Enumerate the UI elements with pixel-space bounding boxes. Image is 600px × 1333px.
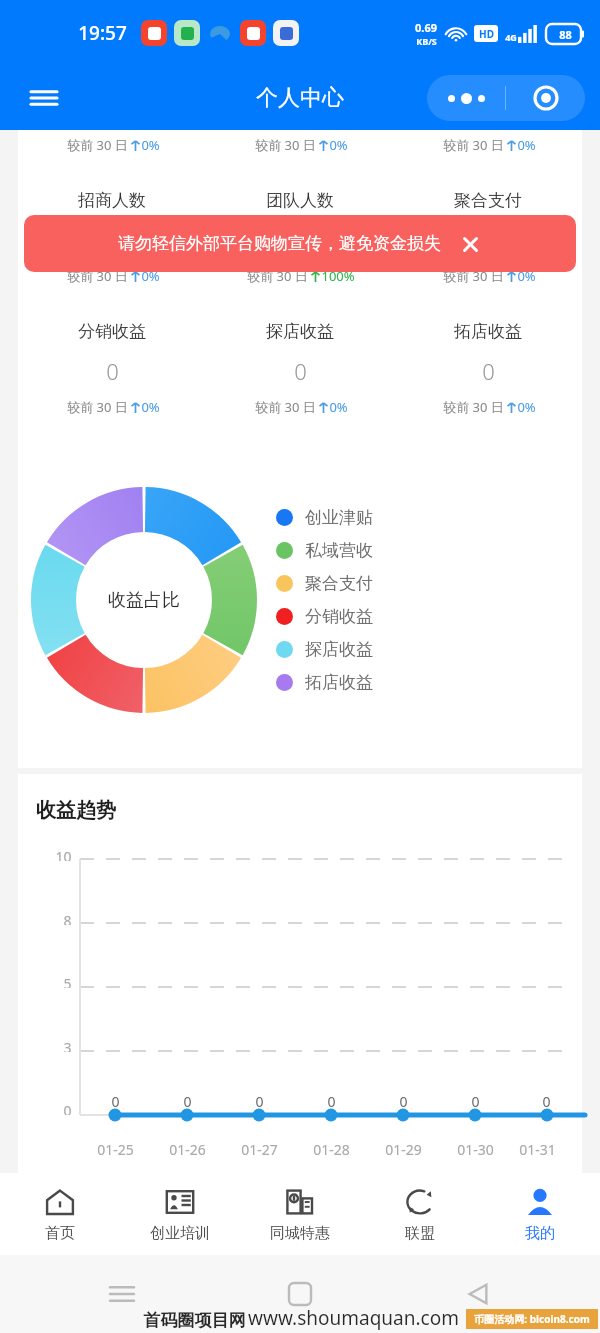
button[interactable]: 聚合支付 bbox=[276, 567, 582, 600]
staticText: 0 bbox=[106, 356, 119, 386]
button[interactable]: 探店收益 bbox=[276, 633, 582, 666]
button[interactable]: 请勿轻信外部平台购物宣传，避免资金损失 bbox=[24, 215, 576, 272]
staticText: 3 bbox=[63, 1038, 72, 1052]
staticText: 0 bbox=[542, 1092, 551, 1111]
staticText: 0 bbox=[255, 1092, 264, 1111]
staticText: 私域营收 bbox=[305, 540, 373, 561]
staticText: 0 bbox=[482, 356, 495, 386]
staticText: 4G bbox=[505, 31, 517, 43]
staticText: 0 bbox=[399, 1092, 408, 1111]
staticText: 较前 30 日 bbox=[441, 267, 506, 285]
staticText: 100% bbox=[321, 267, 355, 285]
staticText: 币圈活动网: bicoin8.com bbox=[474, 1312, 590, 1326]
button[interactable]: Back bbox=[456, 1272, 500, 1316]
button[interactable]: Close bbox=[506, 75, 585, 121]
staticText: 首码圈项目网 bbox=[141, 1308, 248, 1331]
staticText: KB/S bbox=[416, 35, 437, 47]
staticText: 较前 30 日 bbox=[441, 398, 506, 416]
staticText: 0 bbox=[106, 225, 119, 255]
button[interactable]: 聚合支付 bbox=[394, 190, 582, 285]
staticText: 10 bbox=[55, 847, 72, 861]
staticText: 0 bbox=[183, 1092, 192, 1111]
staticText: 0% bbox=[517, 136, 536, 154]
staticText: 我的 bbox=[525, 1224, 555, 1243]
button[interactable]: Home bbox=[278, 1272, 322, 1316]
staticText: 聚合支付 bbox=[305, 573, 373, 594]
staticText: 5 bbox=[63, 974, 72, 988]
button[interactable]: Menu bbox=[24, 78, 64, 118]
staticText: 01-26 bbox=[169, 1140, 206, 1159]
button[interactable]: 拓店收益 bbox=[394, 321, 582, 416]
staticText: 0% bbox=[329, 398, 348, 416]
staticText: 较前 30 日 bbox=[65, 267, 130, 285]
staticText: 创业津贴 bbox=[305, 507, 373, 528]
staticText: 0 bbox=[63, 1101, 72, 1115]
staticText: 收益占比 bbox=[108, 589, 180, 612]
staticText: 个人中心 bbox=[256, 84, 344, 112]
staticText: 0.69 bbox=[415, 20, 437, 35]
button[interactable]: Dismiss bbox=[457, 231, 483, 257]
staticText: 分销收益 bbox=[305, 606, 373, 627]
staticText: 01-27 bbox=[241, 1140, 278, 1159]
staticText: HD bbox=[479, 27, 494, 41]
staticText: 请勿轻信外部平台购物宣传，避免资金损失 bbox=[118, 233, 441, 254]
staticText: 0% bbox=[329, 136, 348, 154]
staticText: 0% bbox=[141, 398, 160, 416]
staticText: 创业培训 bbox=[150, 1224, 210, 1243]
staticText: 8 bbox=[63, 911, 72, 925]
button[interactable]: 创业培训 bbox=[120, 1173, 240, 1255]
staticText: 联盟 bbox=[405, 1224, 435, 1243]
staticText: 分销收益 bbox=[78, 321, 146, 342]
button[interactable]: 分销收益 bbox=[18, 321, 206, 416]
button[interactable]: Recents bbox=[100, 1272, 144, 1316]
staticText: 01-30 bbox=[457, 1140, 494, 1159]
staticText: 拓店收益 bbox=[454, 321, 522, 342]
staticText: 较前 30 日 bbox=[253, 398, 318, 416]
staticText: 01-29 bbox=[385, 1140, 422, 1159]
staticText: 0 bbox=[111, 1092, 120, 1111]
button[interactable]: More bbox=[427, 75, 505, 121]
staticText: 0 bbox=[294, 356, 307, 386]
staticText: 探店收益 bbox=[266, 321, 334, 342]
staticText: 首页 bbox=[45, 1224, 75, 1243]
staticText: 较前 30 日 bbox=[65, 398, 130, 416]
staticText: 较前 30 日 bbox=[245, 267, 310, 285]
staticText: 01-31 bbox=[519, 1140, 556, 1159]
staticText: 聚合支付 bbox=[454, 190, 522, 211]
staticText: 较前 30 日 bbox=[253, 136, 318, 154]
staticText: 0 bbox=[294, 225, 307, 255]
button[interactable]: 团队人数 bbox=[206, 190, 394, 285]
button[interactable]: 探店收益 bbox=[206, 321, 394, 416]
staticText: 较前 30 日 bbox=[65, 136, 130, 154]
staticText: 0 bbox=[471, 1092, 480, 1111]
staticText: 0% bbox=[517, 267, 536, 285]
staticText: 同城特惠 bbox=[270, 1224, 330, 1243]
staticText: 招商人数 bbox=[78, 190, 146, 211]
button[interactable]: 拓店收益 bbox=[276, 666, 582, 699]
button[interactable]: 我的 bbox=[480, 1173, 600, 1255]
staticText: 团队人数 bbox=[266, 190, 334, 211]
staticText: 0% bbox=[517, 398, 536, 416]
staticText: 0% bbox=[141, 267, 160, 285]
staticText: 88 bbox=[559, 27, 572, 42]
staticText: 0 bbox=[327, 1092, 336, 1111]
button[interactable]: 创业津贴 bbox=[276, 501, 582, 534]
staticText: 较前 30 日 bbox=[441, 136, 506, 154]
staticText: 01-25 bbox=[97, 1140, 134, 1159]
staticText: 收益趋势 bbox=[36, 798, 116, 823]
staticText: 01-28 bbox=[313, 1140, 350, 1159]
button[interactable]: 联盟 bbox=[360, 1173, 480, 1255]
button[interactable]: 私域营收 bbox=[276, 534, 582, 567]
staticText: 0% bbox=[141, 136, 160, 154]
button[interactable]: 同城特惠 bbox=[240, 1173, 360, 1255]
staticText: 19:57 bbox=[78, 20, 127, 46]
staticText: www.shoumaquan.com bbox=[248, 1305, 459, 1331]
button[interactable]: 首页 bbox=[0, 1173, 120, 1255]
button[interactable]: 分销收益 bbox=[276, 600, 582, 633]
button[interactable]: 招商人数 bbox=[18, 190, 206, 285]
staticText: 拓店收益 bbox=[305, 672, 373, 693]
staticText: 探店收益 bbox=[305, 639, 373, 660]
